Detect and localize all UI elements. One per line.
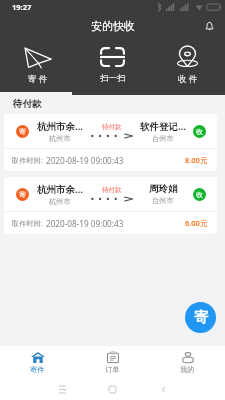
- staticText: 2020-08-19 09:00:43: [46, 155, 124, 166]
- staticText: 待付款: [102, 123, 122, 131]
- staticText: 待付款: [13, 98, 42, 110]
- staticText: 台州市: [152, 134, 174, 143]
- staticText: 杭州市: [49, 197, 71, 206]
- staticText: 杭州市: [49, 134, 71, 143]
- staticText: 寄: [19, 127, 26, 136]
- staticText: 软件登记...: [140, 120, 187, 133]
- button[interactable]: 寄: [185, 302, 216, 333]
- staticText: 待付款: [102, 186, 122, 194]
- staticText: 19:27: [12, 2, 32, 12]
- button[interactable]: 寄件: [0, 351, 75, 374]
- button[interactable]: Notifications: [200, 17, 218, 35]
- staticText: 台州市: [152, 196, 174, 205]
- staticText: 寄: [194, 309, 208, 327]
- button[interactable]: 扫一扫: [75, 45, 150, 84]
- staticText: 杭州市余...: [37, 183, 84, 196]
- button[interactable]: 订单: [75, 351, 150, 374]
- staticText: 扫一扫: [100, 73, 126, 84]
- button[interactable]: Home: [101, 378, 123, 400]
- button[interactable]: Back: [152, 378, 174, 400]
- staticText: 6.00元: [185, 218, 208, 228]
- staticText: 安的快收: [91, 19, 135, 33]
- staticText: 收: [196, 190, 203, 199]
- button[interactable]: 寄 件: [0, 45, 75, 85]
- staticText: 收: [196, 127, 203, 136]
- staticText: 寄件: [30, 365, 45, 374]
- staticText: 杭州市余...: [37, 120, 84, 133]
- button[interactable]: Recents: [51, 378, 73, 400]
- staticText: 收 件: [178, 73, 198, 85]
- button[interactable]: 收 件: [150, 45, 225, 85]
- staticText: 取件时间:: [12, 218, 43, 228]
- staticText: 寄 件: [28, 73, 48, 85]
- button[interactable]: 寄: [4, 177, 217, 234]
- staticText: 寄: [19, 190, 26, 199]
- button[interactable]: 寄: [4, 114, 217, 171]
- staticText: 订单: [105, 365, 120, 374]
- staticText: 2020-08-19 09:00:43: [46, 218, 124, 229]
- staticText: 我的: [180, 365, 195, 374]
- staticText: 取件时间:: [12, 155, 43, 165]
- staticText: 周玲娟: [149, 183, 178, 195]
- button[interactable]: 我的: [150, 351, 225, 374]
- staticText: 8.00元: [185, 155, 208, 165]
